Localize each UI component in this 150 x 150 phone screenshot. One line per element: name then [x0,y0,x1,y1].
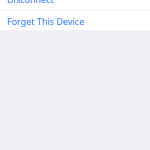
button[interactable]: Forget This Device [0,11,150,30]
staticText: Forget This Device [7,15,85,27]
button[interactable]: Disconnect [0,0,150,10]
staticText: Disconnect [7,0,54,3]
